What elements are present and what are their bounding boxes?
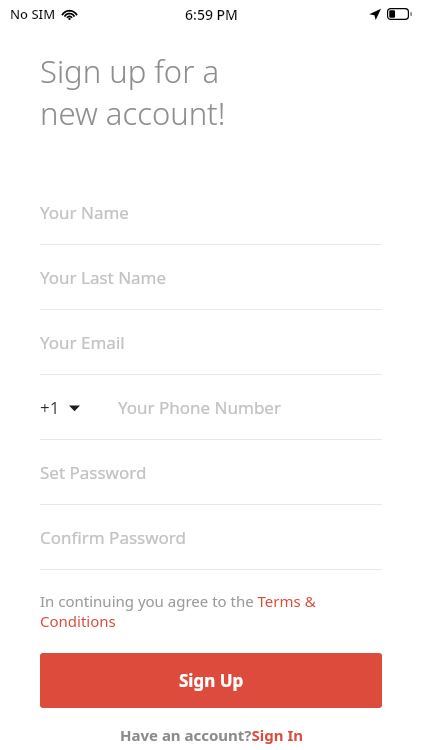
staticText: Set Password bbox=[40, 461, 147, 484]
button[interactable]: Your Last Name bbox=[40, 245, 382, 310]
button[interactable]: Your Email bbox=[40, 310, 382, 375]
button[interactable]: Sign Up bbox=[40, 653, 382, 708]
button[interactable]: Set Password bbox=[40, 440, 382, 505]
staticText: In continuing you agree to the Terms & C… bbox=[40, 591, 382, 631]
staticText: Confirm Password bbox=[40, 526, 186, 549]
staticText: +1 bbox=[40, 396, 60, 419]
staticText: Have an account?Sign In bbox=[120, 725, 303, 745]
button[interactable]: Your Name bbox=[40, 180, 382, 245]
button[interactable]: Your Phone Number bbox=[118, 396, 382, 419]
staticText: 6:59 PM bbox=[185, 5, 238, 24]
staticText: new account! bbox=[40, 92, 226, 134]
staticText: Your Email bbox=[40, 331, 125, 354]
button[interactable]: Confirm Password bbox=[40, 505, 382, 570]
button[interactable]: In continuing you agree to the Terms & C… bbox=[40, 591, 382, 631]
staticText: Your Last Name bbox=[40, 266, 167, 289]
staticText: Your Phone Number bbox=[118, 396, 281, 419]
staticText: Sign up for a bbox=[40, 50, 220, 92]
staticText: Sign Up bbox=[179, 669, 244, 692]
button[interactable]: Have an account?Sign In bbox=[120, 725, 303, 745]
staticText: Your Name bbox=[40, 201, 129, 224]
button[interactable]: Select country code bbox=[40, 396, 80, 419]
staticText: No SIM bbox=[10, 5, 56, 23]
